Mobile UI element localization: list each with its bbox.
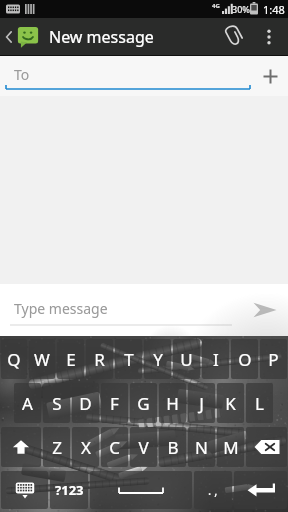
staticText: B bbox=[167, 436, 179, 459]
staticText: O bbox=[238, 348, 252, 371]
button[interactable]: Backspace bbox=[246, 427, 287, 467]
button[interactable]: G bbox=[130, 383, 157, 423]
staticText: W bbox=[34, 348, 50, 371]
staticText: E bbox=[66, 348, 76, 371]
staticText: To bbox=[14, 65, 30, 84]
staticText: New message bbox=[49, 26, 154, 48]
button[interactable]: J bbox=[188, 383, 215, 423]
staticText: P bbox=[268, 348, 279, 371]
staticText: 30% bbox=[232, 3, 250, 15]
staticText: A bbox=[22, 392, 33, 415]
button[interactable]: V bbox=[130, 427, 157, 467]
staticText: 1:48 bbox=[263, 2, 285, 17]
button[interactable]: A bbox=[14, 383, 41, 423]
button[interactable]: C bbox=[101, 427, 128, 467]
button[interactable]: P bbox=[260, 339, 287, 379]
button[interactable]: Hide keyboard bbox=[1, 471, 48, 509]
button[interactable]: D bbox=[72, 383, 99, 423]
button[interactable]: N bbox=[188, 427, 215, 467]
staticText: M bbox=[223, 436, 239, 459]
button[interactable]: O bbox=[231, 339, 258, 379]
staticText: J bbox=[199, 392, 204, 415]
staticText: C bbox=[109, 436, 120, 459]
button[interactable]: Y bbox=[144, 339, 171, 379]
button[interactable]: T bbox=[115, 339, 142, 379]
button[interactable]: W bbox=[29, 339, 55, 379]
staticText: Z bbox=[52, 436, 62, 459]
staticText: G bbox=[137, 392, 150, 415]
button[interactable]: To bbox=[6, 60, 250, 92]
staticText: N bbox=[195, 436, 208, 459]
button[interactable]: Back bbox=[0, 18, 43, 56]
staticText: F bbox=[110, 392, 119, 415]
button[interactable]: Z bbox=[43, 427, 70, 467]
button[interactable]: U bbox=[173, 339, 200, 379]
button[interactable]: S bbox=[43, 383, 70, 423]
button[interactable]: H bbox=[159, 383, 186, 423]
button[interactable]: Type message bbox=[8, 293, 236, 327]
button[interactable]: B bbox=[159, 427, 186, 467]
staticText: 4G bbox=[212, 2, 220, 10]
button[interactable]: Add recipient bbox=[252, 58, 288, 94]
button[interactable]: More options bbox=[252, 20, 286, 54]
button[interactable]: Space bbox=[90, 471, 192, 509]
staticText: H bbox=[166, 392, 179, 415]
staticText: K bbox=[225, 392, 236, 415]
button[interactable]: Send bbox=[242, 287, 288, 333]
staticText: S bbox=[52, 392, 62, 415]
button[interactable]: L bbox=[246, 383, 273, 423]
button[interactable]: Enter bbox=[234, 471, 287, 509]
staticText: L bbox=[255, 392, 264, 415]
staticText: D bbox=[79, 392, 92, 415]
staticText: T bbox=[124, 348, 134, 371]
button[interactable]: . , bbox=[194, 471, 232, 509]
staticText: ?123 bbox=[55, 481, 84, 499]
staticText: R bbox=[94, 348, 105, 371]
staticText: U bbox=[180, 348, 193, 371]
button[interactable]: Shift bbox=[1, 427, 41, 467]
button[interactable]: Q bbox=[1, 339, 27, 379]
button[interactable]: F bbox=[101, 383, 128, 423]
button[interactable]: Attach bbox=[214, 18, 252, 56]
staticText: Y bbox=[153, 348, 163, 371]
staticText: I bbox=[213, 348, 219, 371]
staticText: X bbox=[81, 436, 91, 459]
staticText: . , bbox=[208, 482, 218, 498]
button[interactable]: I bbox=[202, 339, 229, 379]
button[interactable]: X bbox=[72, 427, 99, 467]
button[interactable]: E bbox=[57, 339, 84, 379]
staticText: Q bbox=[7, 348, 21, 371]
staticText: Type message bbox=[14, 299, 108, 318]
button[interactable]: R bbox=[86, 339, 113, 379]
button[interactable]: ?123 bbox=[50, 471, 88, 509]
button[interactable]: K bbox=[217, 383, 244, 423]
button[interactable]: M bbox=[217, 427, 244, 467]
staticText: V bbox=[138, 436, 149, 459]
